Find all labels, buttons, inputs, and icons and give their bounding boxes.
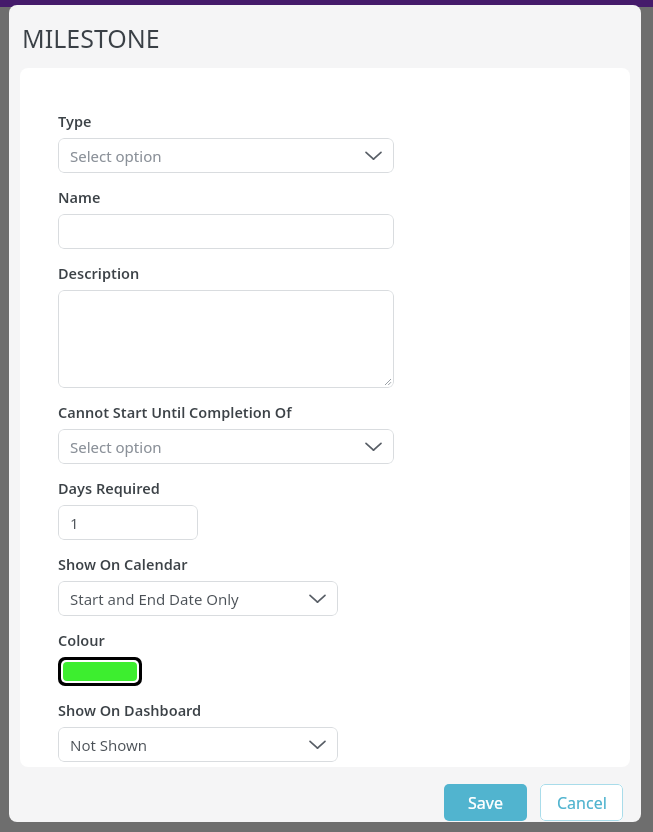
staticText: Not Shown [70,735,148,755]
button[interactable] [58,214,394,249]
staticText: Select option [70,437,162,457]
staticText: Cancel [557,792,607,814]
button[interactable] [58,290,394,388]
staticText: Show On Calendar [58,554,188,574]
staticText: Select option [70,146,162,166]
button[interactable]: Cancel [540,784,623,821]
staticText: 1 [70,513,79,533]
button[interactable]: Select option [58,429,394,464]
staticText: Save [468,792,503,814]
button[interactable]: 1 [58,505,198,540]
staticText: Type [58,111,92,131]
staticText: Cannot Start Until Completion Of [58,402,292,422]
staticText: Show On Dashboard [58,700,202,720]
staticText: Colour [58,630,105,650]
staticText: Description [58,263,140,283]
staticText: Days Required [58,478,160,498]
staticText: Name [58,187,101,207]
button[interactable]: Not Shown [58,727,338,762]
staticText: MILESTONE [22,21,160,55]
button[interactable]: Select option [58,138,394,173]
button[interactable]: Pick colour [63,662,137,681]
button[interactable]: Save [444,784,527,821]
staticText: Start and End Date Only [70,589,239,609]
button[interactable]: Start and End Date Only [58,581,338,616]
